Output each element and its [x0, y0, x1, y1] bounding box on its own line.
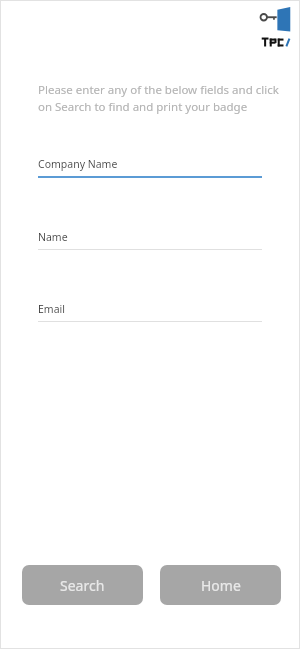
other: TPC logo [259, 6, 293, 50]
button[interactable]: Home [160, 565, 281, 605]
staticText: Home [201, 576, 241, 595]
button[interactable]: Search [22, 565, 143, 605]
staticText: Search [60, 576, 105, 595]
staticText: Email [38, 302, 65, 316]
staticText: Company Name [38, 157, 118, 171]
button[interactable]: Name [38, 230, 262, 250]
staticText: Please enter any of the below fields and… [38, 82, 280, 115]
staticText: Name [38, 230, 68, 244]
button[interactable]: Email [38, 302, 262, 322]
button[interactable]: Company Name [38, 157, 262, 178]
